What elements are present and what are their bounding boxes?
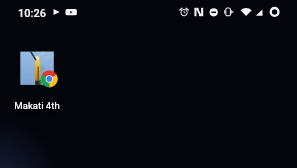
staticText: 10:26 xyxy=(18,7,46,20)
staticText: Makati 4th xyxy=(8,100,66,114)
button[interactable]: Open Makati 4th web app shortcut xyxy=(8,46,66,114)
